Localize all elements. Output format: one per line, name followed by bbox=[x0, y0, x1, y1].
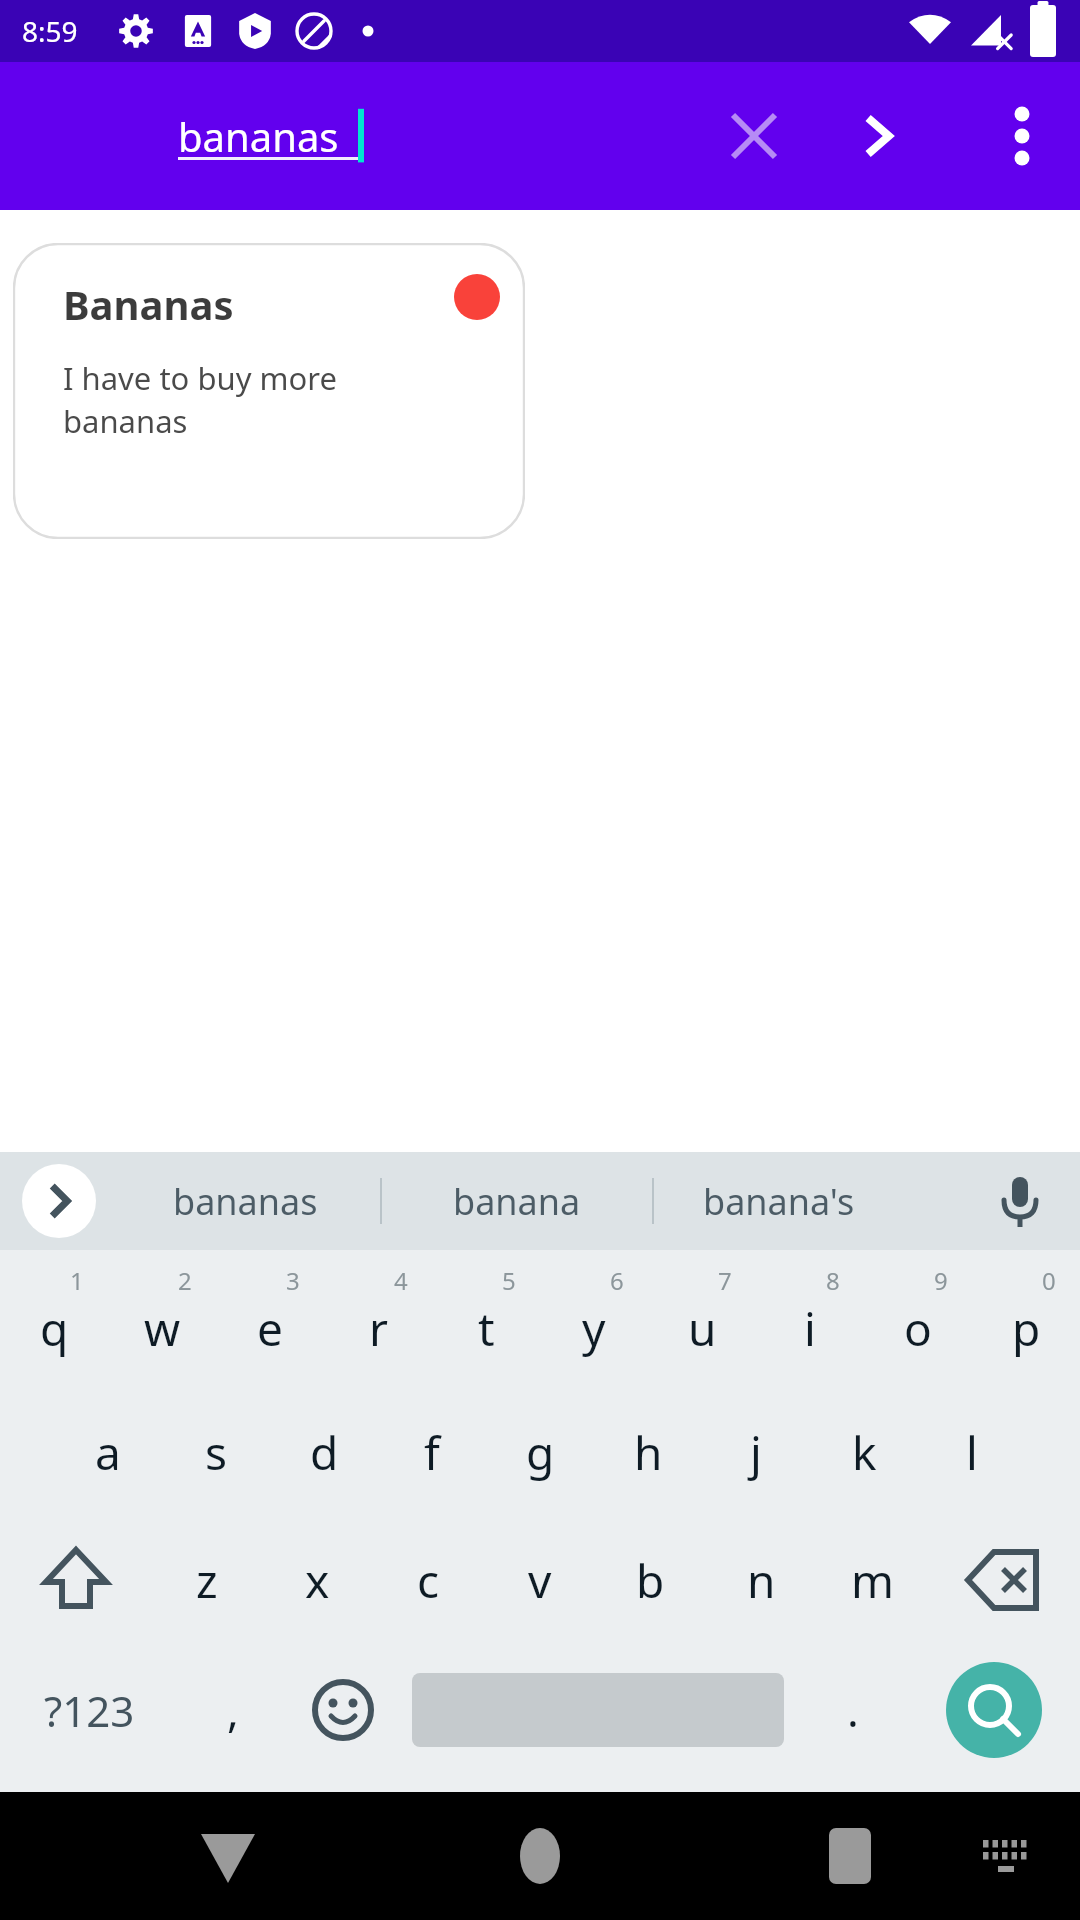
staticText: g bbox=[526, 1421, 555, 1484]
staticText: 3 bbox=[286, 1264, 300, 1297]
button[interactable]: l bbox=[918, 1388, 1026, 1516]
button[interactable]: Shift bbox=[0, 1516, 152, 1644]
button[interactable]: z bbox=[152, 1516, 262, 1644]
staticText: t bbox=[478, 1297, 495, 1360]
button[interactable]: j bbox=[702, 1388, 810, 1516]
staticText: e bbox=[257, 1297, 283, 1360]
button[interactable]: 4 bbox=[324, 1260, 432, 1388]
button[interactable]: ?123 bbox=[0, 1644, 178, 1776]
staticText: p bbox=[1012, 1297, 1041, 1360]
button[interactable]: Search bbox=[946, 1662, 1042, 1758]
button[interactable]: v bbox=[484, 1516, 595, 1644]
staticText: 0 bbox=[1042, 1264, 1056, 1297]
staticText: . bbox=[847, 1680, 859, 1740]
staticText: i bbox=[804, 1297, 816, 1360]
staticText: ?123 bbox=[44, 1682, 135, 1739]
button[interactable]: bananas bbox=[178, 96, 358, 176]
button[interactable]: Voice input bbox=[982, 1163, 1058, 1239]
staticText: banana bbox=[453, 1177, 581, 1226]
staticText: k bbox=[852, 1421, 877, 1484]
staticText: j bbox=[750, 1421, 762, 1484]
button[interactable]: m bbox=[817, 1516, 928, 1644]
staticText: 5 bbox=[502, 1264, 516, 1297]
button[interactable]: 1 bbox=[0, 1260, 108, 1388]
staticText: bananas bbox=[173, 1177, 318, 1226]
staticText: 1 bbox=[70, 1264, 84, 1297]
button[interactable]: Backspace bbox=[928, 1516, 1080, 1644]
button[interactable]: Expand suggestions bbox=[22, 1164, 96, 1238]
button[interactable]: g bbox=[486, 1388, 594, 1516]
staticText: h bbox=[634, 1421, 663, 1484]
button[interactable]: 9 bbox=[864, 1260, 972, 1388]
staticText: u bbox=[688, 1297, 717, 1360]
staticText: I have to buy more bananas bbox=[63, 357, 465, 442]
staticText: Bananas bbox=[63, 277, 234, 331]
button[interactable]: a bbox=[54, 1388, 162, 1516]
staticText: f bbox=[424, 1421, 440, 1484]
button[interactable]: 7 bbox=[648, 1260, 756, 1388]
staticText: m bbox=[851, 1549, 895, 1612]
staticText: 8:59 bbox=[22, 12, 78, 50]
button[interactable]: Bananas bbox=[13, 243, 525, 539]
button[interactable]: Next bbox=[842, 100, 914, 172]
button[interactable]: Recents bbox=[790, 1796, 910, 1916]
button[interactable]: k bbox=[810, 1388, 918, 1516]
button[interactable]: banana bbox=[382, 1152, 652, 1250]
button[interactable]: More options bbox=[986, 100, 1058, 172]
staticText: d bbox=[310, 1421, 339, 1484]
button[interactable]: h bbox=[594, 1388, 702, 1516]
staticText: b bbox=[636, 1549, 665, 1612]
staticText: 6 bbox=[610, 1264, 624, 1297]
button[interactable]: bananas bbox=[110, 1152, 380, 1250]
button[interactable]: c bbox=[373, 1516, 484, 1644]
button[interactable]: Clear query bbox=[718, 100, 790, 172]
staticText: z bbox=[196, 1549, 218, 1612]
button[interactable]: . bbox=[798, 1644, 908, 1776]
staticText: 2 bbox=[178, 1264, 192, 1297]
staticText: bananas bbox=[178, 109, 339, 163]
button[interactable]: 3 bbox=[216, 1260, 324, 1388]
button[interactable]: Switch keyboard bbox=[950, 1801, 1060, 1911]
staticText: w bbox=[144, 1297, 181, 1360]
staticText: s bbox=[205, 1421, 228, 1484]
staticText: 8 bbox=[826, 1264, 840, 1297]
staticText: q bbox=[40, 1297, 69, 1360]
button[interactable]: 5 bbox=[432, 1260, 540, 1388]
staticText: 4 bbox=[394, 1264, 408, 1297]
staticText: l bbox=[966, 1421, 978, 1484]
button[interactable]: banana's bbox=[654, 1152, 904, 1250]
button[interactable]: 6 bbox=[540, 1260, 648, 1388]
staticText: c bbox=[417, 1549, 440, 1612]
button[interactable]: 2 bbox=[108, 1260, 216, 1388]
staticText: n bbox=[747, 1549, 776, 1612]
button[interactable]: 0 bbox=[972, 1260, 1080, 1388]
button[interactable]: Home bbox=[480, 1796, 600, 1916]
button[interactable]: Emoji bbox=[288, 1644, 398, 1776]
staticText: banana's bbox=[703, 1177, 855, 1226]
staticText: 9 bbox=[934, 1264, 948, 1297]
staticText: r bbox=[369, 1297, 388, 1360]
button[interactable]: x bbox=[262, 1516, 373, 1644]
button[interactable]: 8 bbox=[756, 1260, 864, 1388]
button[interactable]: d bbox=[270, 1388, 378, 1516]
staticText: o bbox=[904, 1297, 932, 1360]
button[interactable]: f bbox=[378, 1388, 486, 1516]
staticText: v bbox=[528, 1549, 552, 1612]
button[interactable]: n bbox=[706, 1516, 817, 1644]
staticText: y bbox=[582, 1297, 606, 1360]
staticText: x bbox=[305, 1549, 330, 1612]
staticText: a bbox=[95, 1421, 121, 1484]
staticText: 7 bbox=[718, 1264, 732, 1297]
staticText: , bbox=[227, 1680, 239, 1740]
button[interactable]: b bbox=[595, 1516, 706, 1644]
button[interactable]: s bbox=[162, 1388, 270, 1516]
button[interactable]: , bbox=[178, 1644, 288, 1776]
button[interactable]: Back bbox=[168, 1796, 288, 1916]
